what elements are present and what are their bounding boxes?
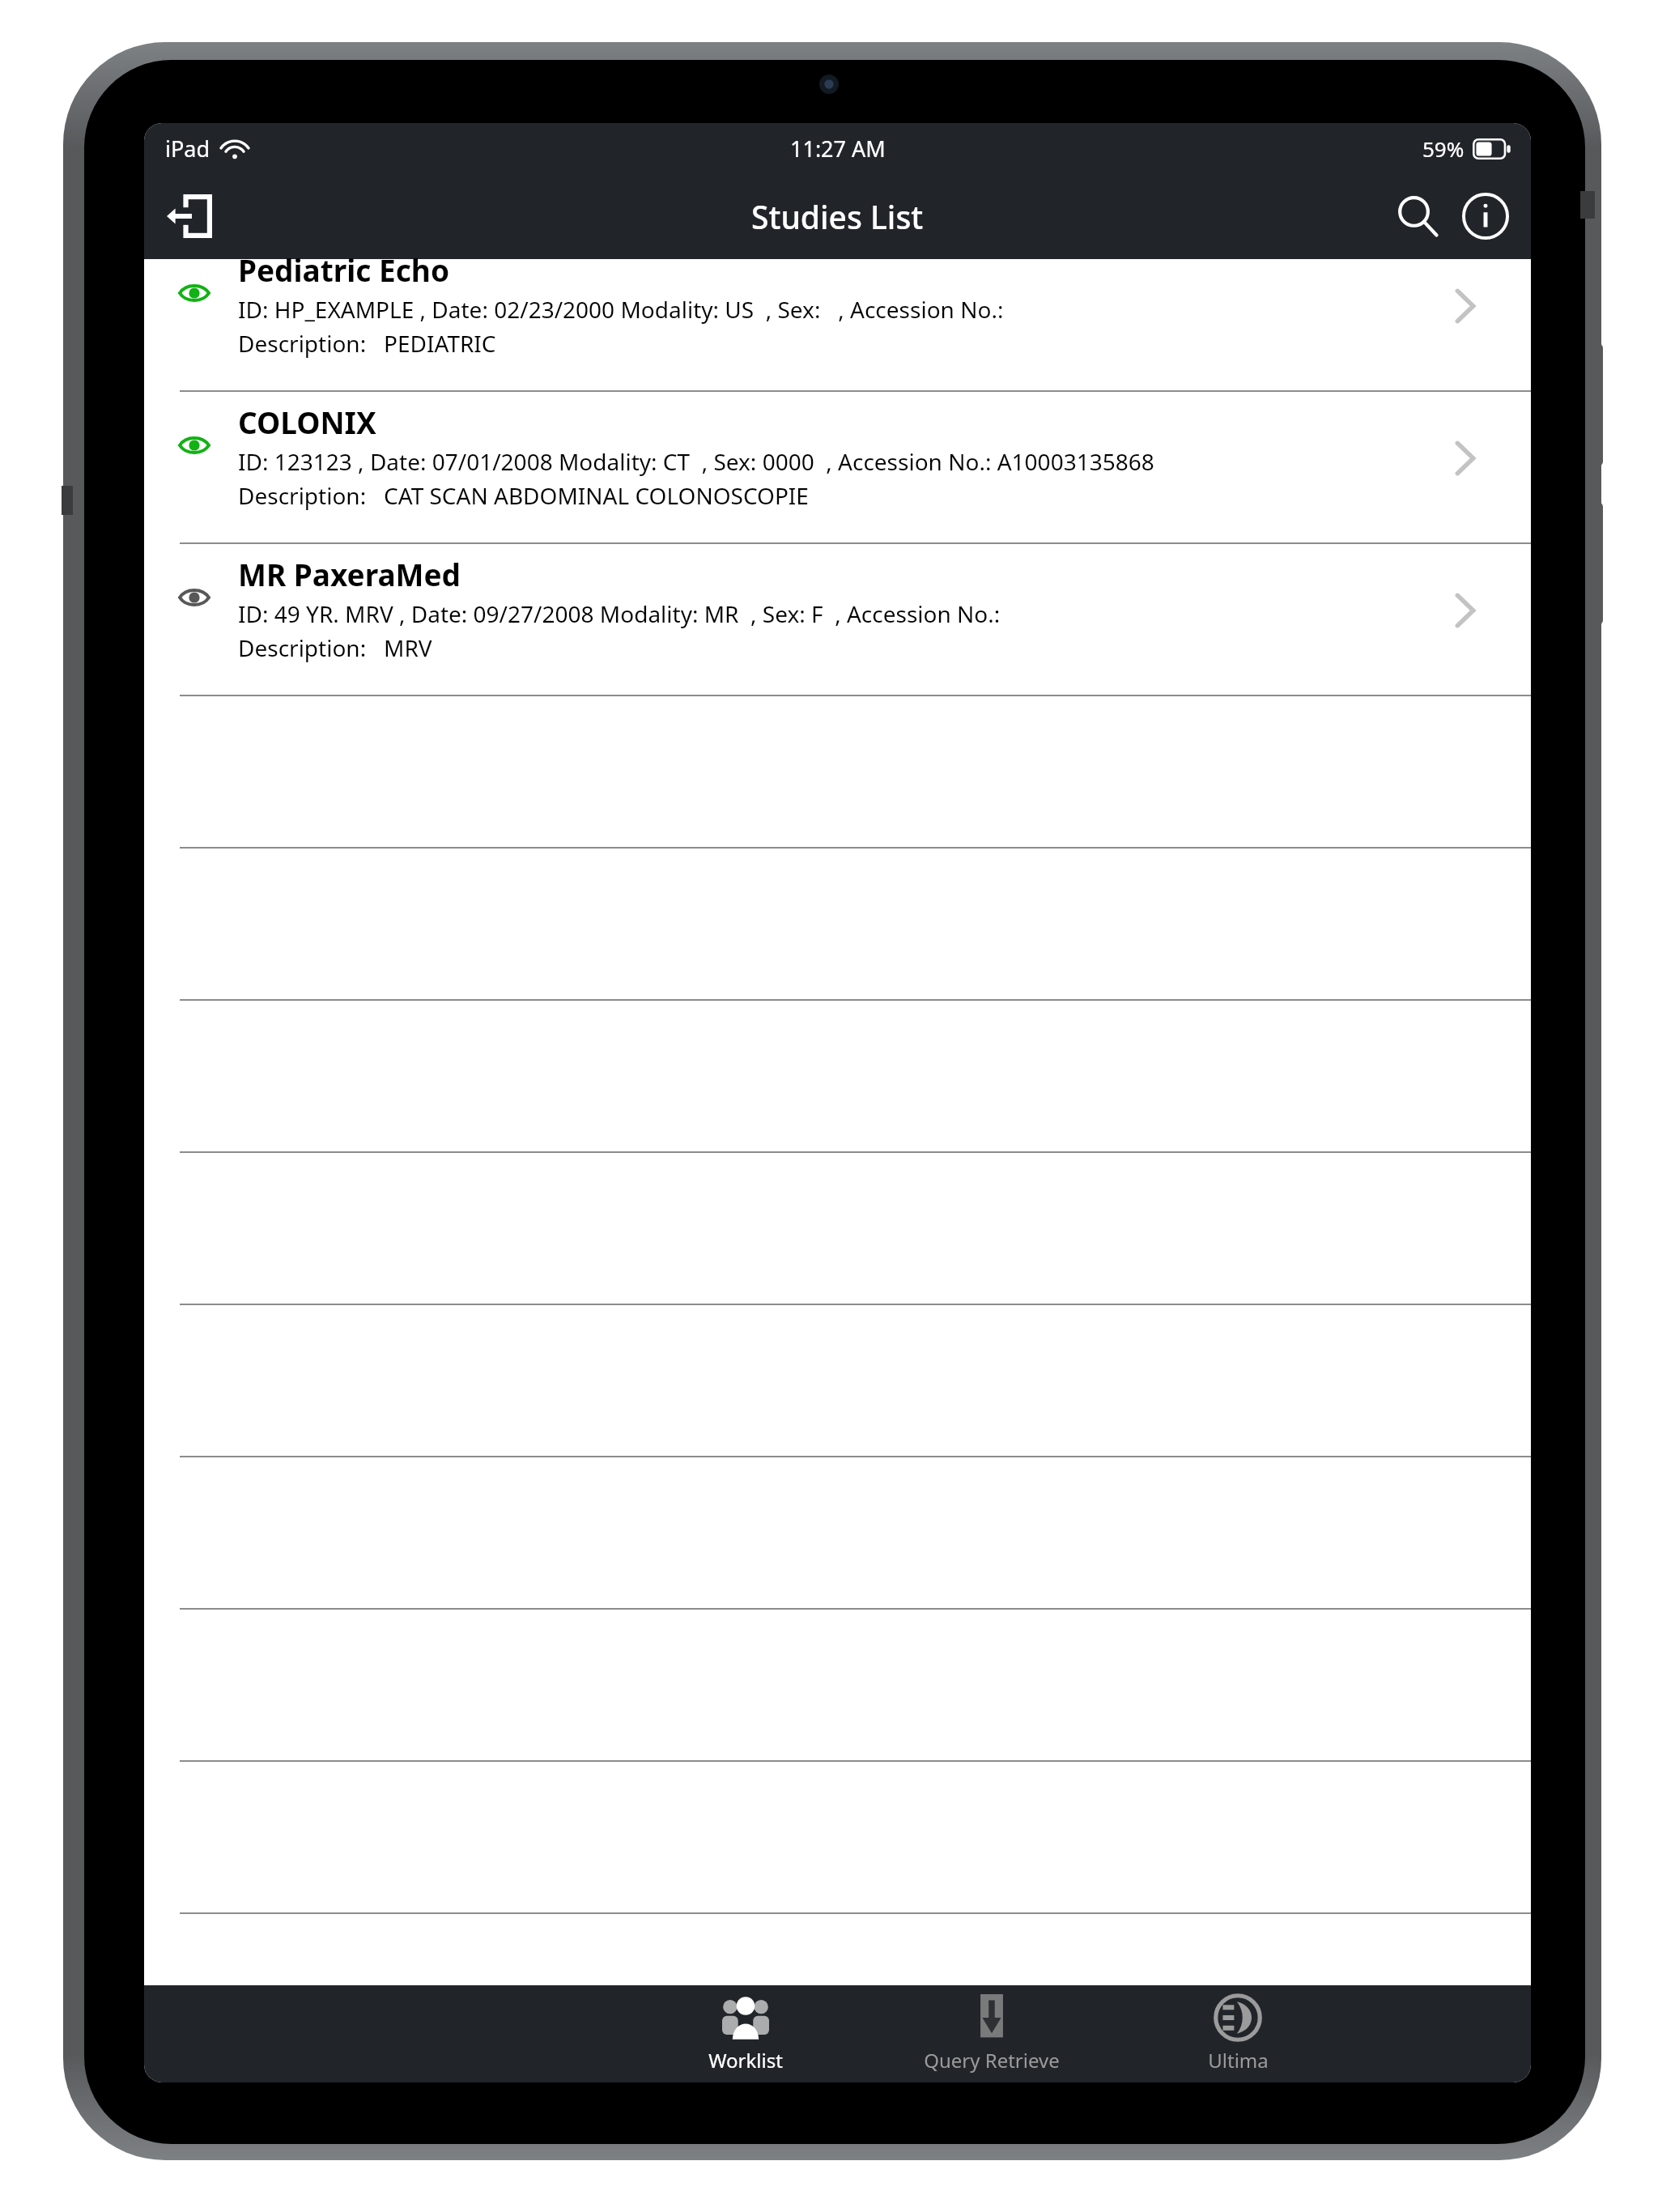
button[interactable]: Worklist [646,1985,845,2082]
button[interactable]: Log out [155,182,223,250]
staticText: iPad [165,134,210,164]
button[interactable]: Query Retrieve [892,1985,1091,2082]
staticText: ID: 123123 , Date: 07/01/2008 Modality: … [238,446,1154,477]
staticText: 11:27 AM [790,134,886,164]
staticText: Studies List [751,195,924,238]
staticText: ID: 49 YR. MRV , Date: 09/27/2008 Modali… [238,598,1001,629]
staticText: Description: PEDIATRIC [238,328,496,359]
button[interactable]: Info [1452,182,1520,250]
staticText: Query Retrieve [924,2047,1060,2074]
staticText: Ultima [1208,2047,1269,2074]
staticText: COLONIX [238,402,376,442]
staticText: ID: HP_EXAMPLE , Date: 02/23/2000 Modali… [238,294,1004,325]
staticText: Pediatric Echo [238,249,450,290]
staticText: Description: MRV [238,632,432,663]
button[interactable]: COLONIX [144,390,1531,542]
staticText: 59% [1422,134,1465,163]
staticText: MR PaxeraMed [238,554,461,594]
staticText: Description: CAT SCAN ABDOMINAL COLONOSC… [238,480,809,511]
staticText: Worklist [708,2047,783,2074]
button[interactable]: Pediatric Echo [144,238,1531,390]
button[interactable]: Search [1384,182,1452,250]
button[interactable]: Ultima [1138,1985,1337,2082]
button[interactable]: MR PaxeraMed [144,542,1531,695]
